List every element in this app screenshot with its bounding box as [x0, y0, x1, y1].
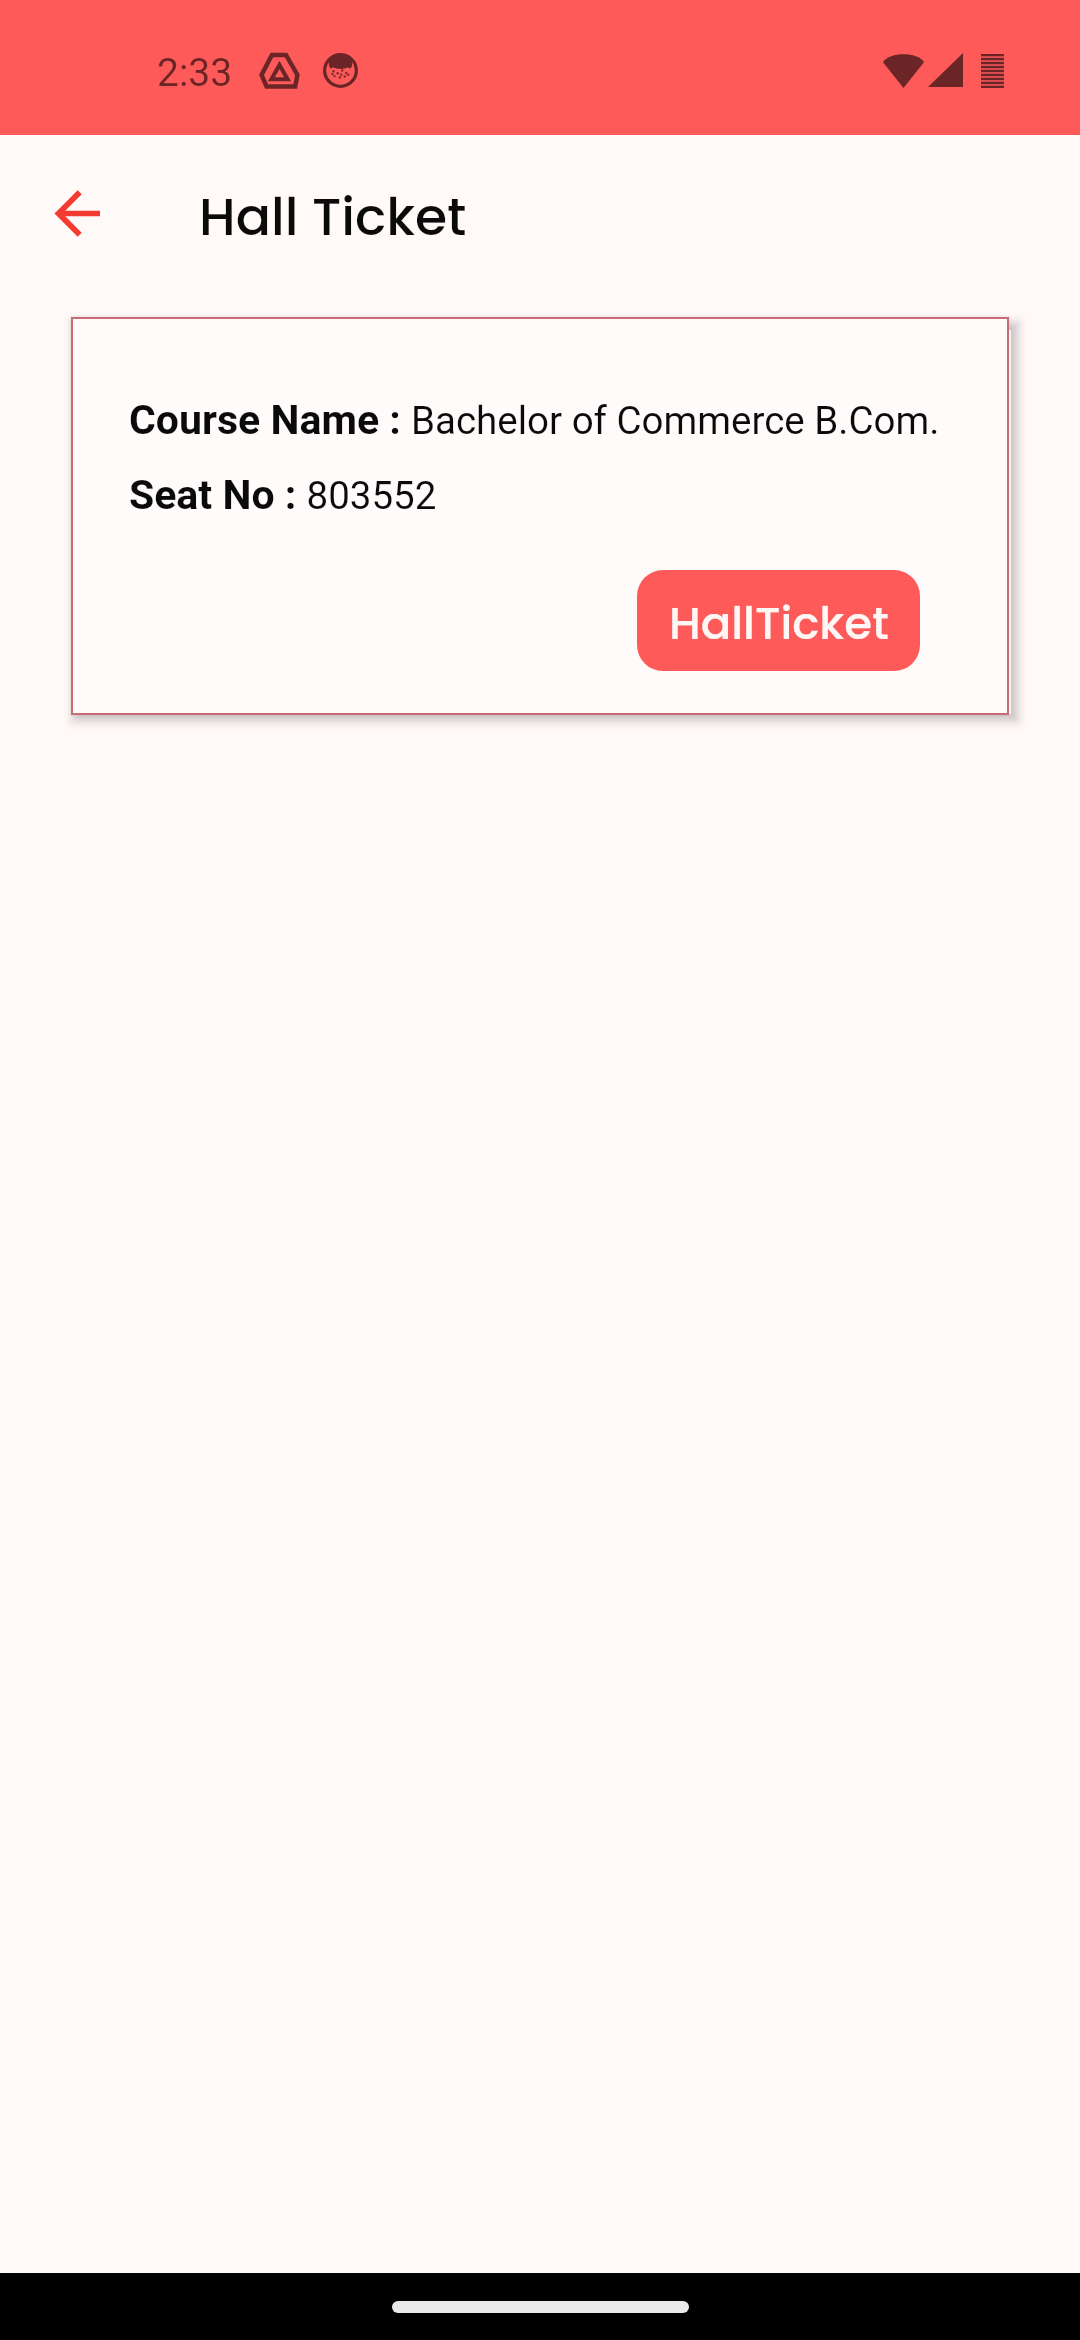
button[interactable]: Back [41, 177, 113, 249]
staticText: Course Name : Bachelor of Commerce B.Com… [129, 396, 940, 444]
staticText: HallTicket [669, 601, 889, 653]
button[interactable]: HallTicket [637, 570, 920, 671]
staticText: Seat No : 803552 [129, 471, 437, 519]
staticText: 2:33 [157, 50, 233, 96]
staticText: Hall Ticket [199, 191, 467, 251]
